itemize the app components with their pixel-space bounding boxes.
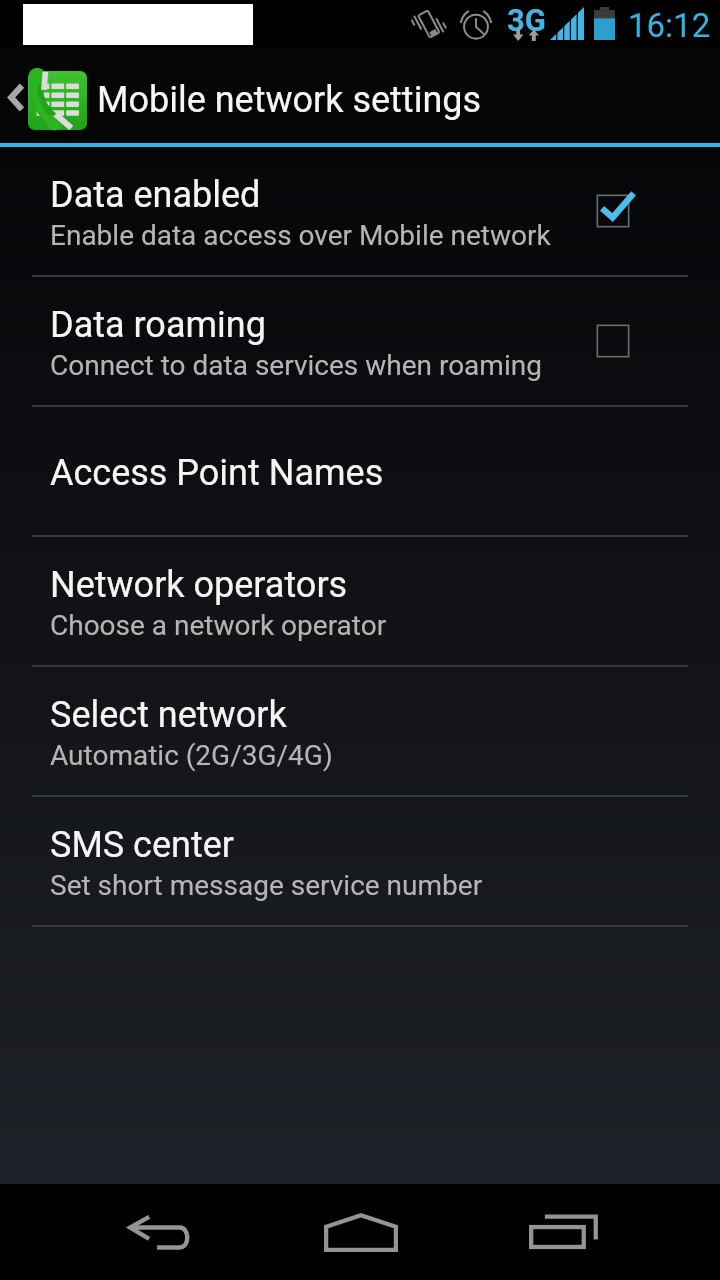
button[interactable]: Data enabled	[0, 147, 720, 275]
staticText: Access Point Names	[50, 452, 384, 494]
button[interactable]: Navigate up	[0, 48, 720, 143]
staticText: 3G	[507, 2, 546, 38]
staticText: Connect to data services when roaming	[50, 349, 542, 382]
staticText: Select network	[50, 694, 287, 736]
staticText: Mobile network settings	[97, 79, 482, 121]
staticText: Set short message service number	[50, 869, 483, 902]
staticText: Network operators	[50, 564, 348, 606]
button[interactable]: Select network	[0, 667, 720, 795]
staticText: Data enabled	[50, 174, 261, 216]
button[interactable]: Home	[281, 1184, 441, 1280]
staticText: Automatic (2G/3G/4G)	[50, 739, 333, 772]
button[interactable]: Network operators	[0, 537, 720, 665]
button[interactable]: SMS center	[0, 797, 720, 925]
staticText: 16:12	[628, 6, 711, 45]
staticText: SMS center	[50, 824, 234, 866]
staticText: Choose a network operator	[50, 609, 387, 642]
button[interactable]: Recent apps	[483, 1184, 643, 1280]
button[interactable]: Back	[80, 1184, 240, 1280]
staticText: Data roaming	[50, 304, 266, 346]
staticText: Enable data access over Mobile network	[50, 219, 551, 252]
button[interactable]: Data roaming	[0, 277, 720, 405]
button[interactable]: Access Point Names	[0, 407, 720, 535]
